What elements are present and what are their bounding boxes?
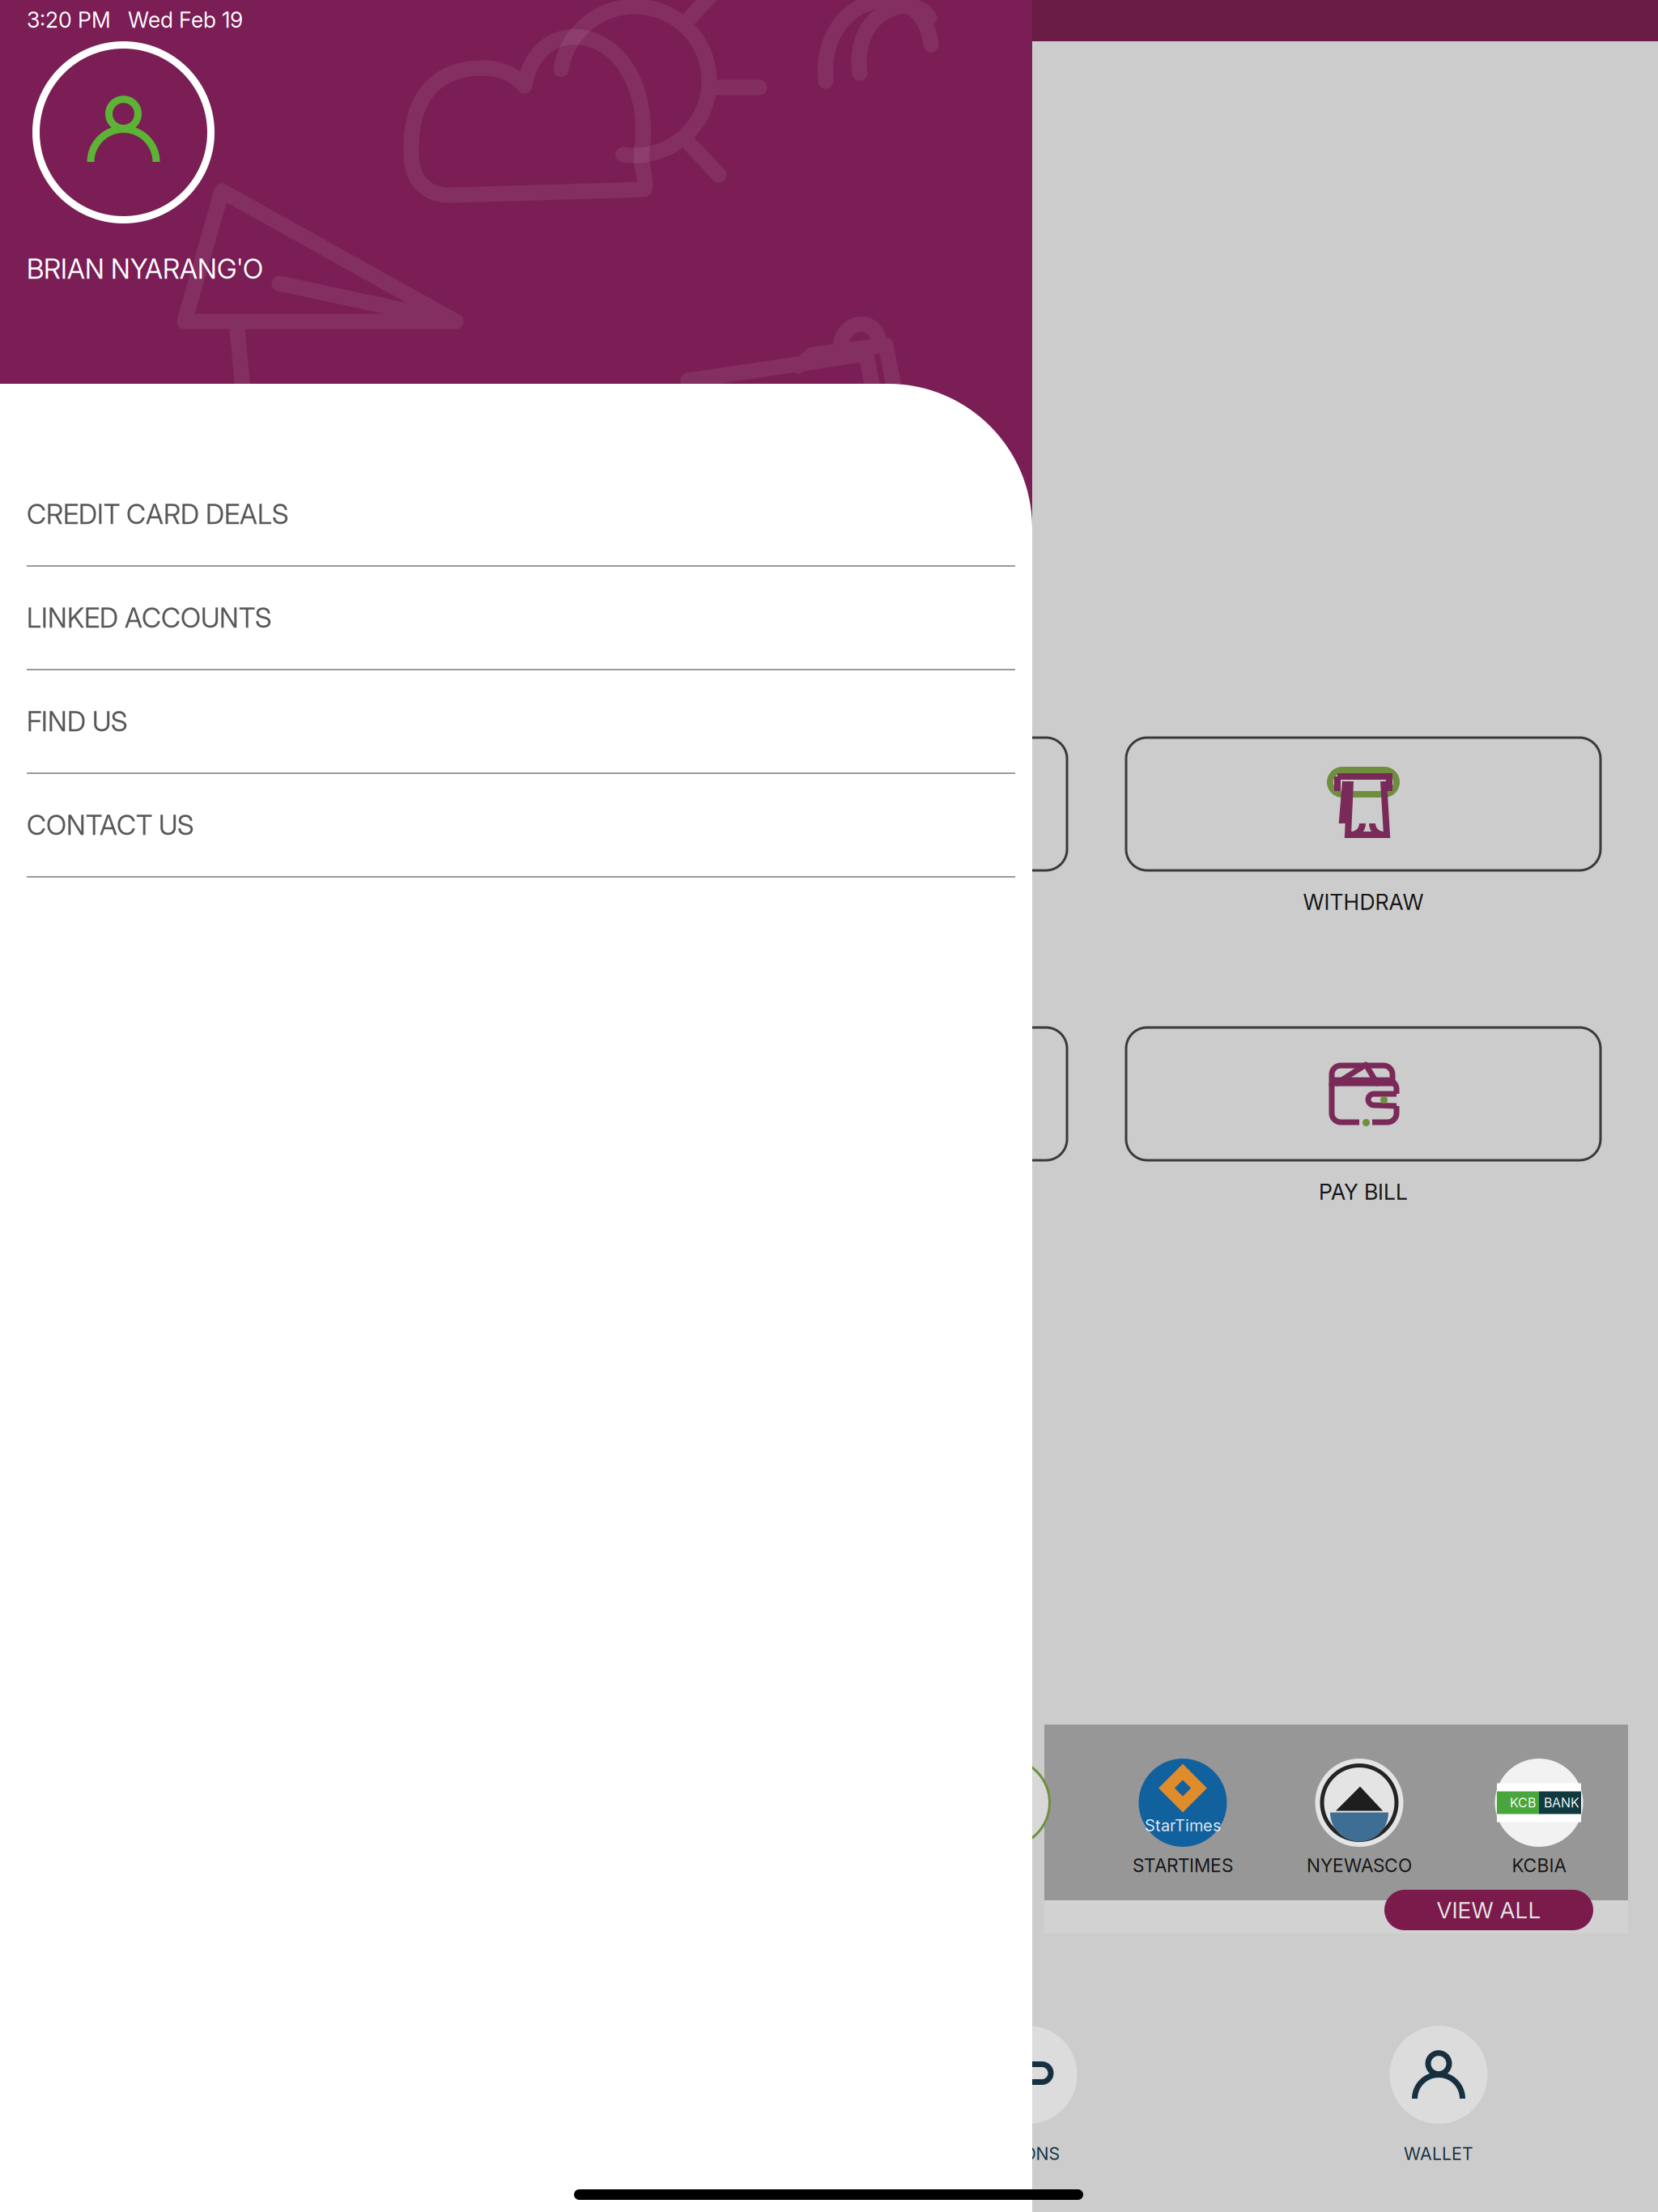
staticText: KCBIA <box>1512 1854 1566 1877</box>
staticText: BANK <box>1544 1795 1579 1811</box>
button[interactable]: Biller <box>908 1759 1103 1878</box>
button[interactable]: VIEW ALL <box>1384 1890 1593 1930</box>
staticText: WITHDRAW <box>1303 889 1424 915</box>
staticText: StarTimes <box>1145 1816 1221 1835</box>
button[interactable]: PAY BILL <box>1126 1027 1601 1214</box>
staticText: BRIAN NYARANG'O <box>27 252 263 285</box>
staticText: PAY BILL <box>1319 1179 1408 1205</box>
staticText: LINKED ACCOUNTS <box>27 601 271 634</box>
button[interactable]: KCBIA <box>1442 1759 1636 1878</box>
staticText: FIND US <box>27 705 127 738</box>
button[interactable]: FIND US <box>27 670 1015 774</box>
button[interactable] <box>593 1027 1067 1214</box>
button[interactable]: LINKED ACCOUNTS <box>27 567 1015 670</box>
staticText: STARTIMES <box>1133 1854 1233 1877</box>
button[interactable]: CREDIT CARD DEALS <box>27 463 1015 567</box>
button[interactable]: TRANSACTIONS <box>858 2026 1198 2166</box>
staticText: CREDIT CARD DEALS <box>27 498 288 530</box>
button[interactable]: Profile photo <box>33 42 214 223</box>
staticText: VIEW ALL <box>1437 1896 1541 1924</box>
button[interactable]: NYEWASCO <box>1262 1759 1456 1878</box>
staticText: CONTACT US <box>27 809 193 841</box>
staticText: NYEWASCO <box>1307 1854 1412 1877</box>
button[interactable]: WALLET <box>1269 2026 1609 2166</box>
staticText: 3:20 PM Wed Feb 19 <box>27 7 243 33</box>
staticText: KCB <box>1510 1795 1536 1811</box>
button[interactable]: STARTIMES <box>1086 1759 1280 1878</box>
staticText: WALLET <box>1404 2143 1473 2164</box>
staticText: TRANSACTIONS <box>923 2143 1060 2164</box>
button[interactable]: CONTACT US <box>27 774 1015 878</box>
button[interactable]: WITHDRAW <box>1126 738 1601 924</box>
button[interactable] <box>593 738 1067 924</box>
